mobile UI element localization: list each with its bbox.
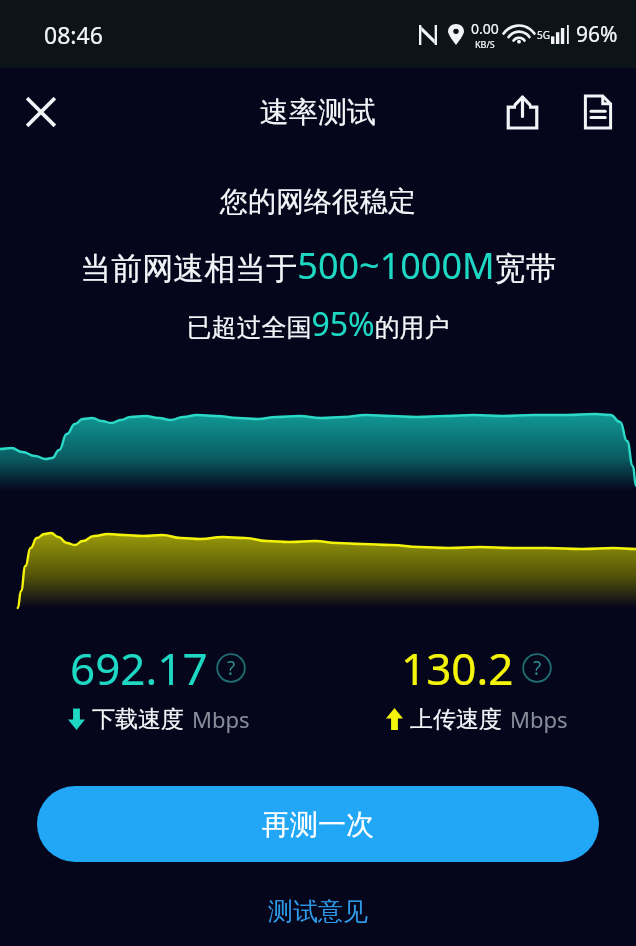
staticText: 0.00 — [471, 19, 499, 38]
button[interactable]: Upload speed info — [520, 651, 554, 685]
button[interactable]: 测试意见 — [252, 888, 384, 935]
staticText: Mbps — [510, 704, 568, 734]
staticText: 08:46 — [44, 19, 103, 50]
button[interactable]: Share — [496, 86, 548, 138]
staticText: 测试意见 — [268, 896, 368, 927]
staticText: 速率测试 — [260, 94, 376, 131]
staticText: 692.17 — [70, 638, 208, 698]
button[interactable]: Report — [572, 86, 624, 138]
staticText: ? — [533, 655, 542, 681]
button[interactable]: 再测一次 — [37, 786, 599, 862]
staticText: 您的网络很稳定 — [220, 184, 416, 219]
staticText: 96% — [576, 20, 618, 49]
staticText: 上传速度 — [410, 705, 502, 734]
staticText: 下载速度 — [92, 705, 184, 734]
staticText: 当前网速相当于500~1000M宽带 — [80, 241, 557, 290]
staticText: KB/S — [475, 38, 495, 50]
staticText: ? — [227, 655, 236, 681]
button[interactable]: Close — [14, 85, 68, 139]
staticText: 再测一次 — [262, 807, 374, 842]
staticText: 130.2 — [401, 638, 514, 698]
button[interactable]: Download speed info — [214, 651, 248, 685]
staticText: 5G — [537, 28, 550, 42]
staticText: Mbps — [192, 704, 250, 734]
staticText: 已超过全国95%的用户 — [186, 302, 450, 346]
